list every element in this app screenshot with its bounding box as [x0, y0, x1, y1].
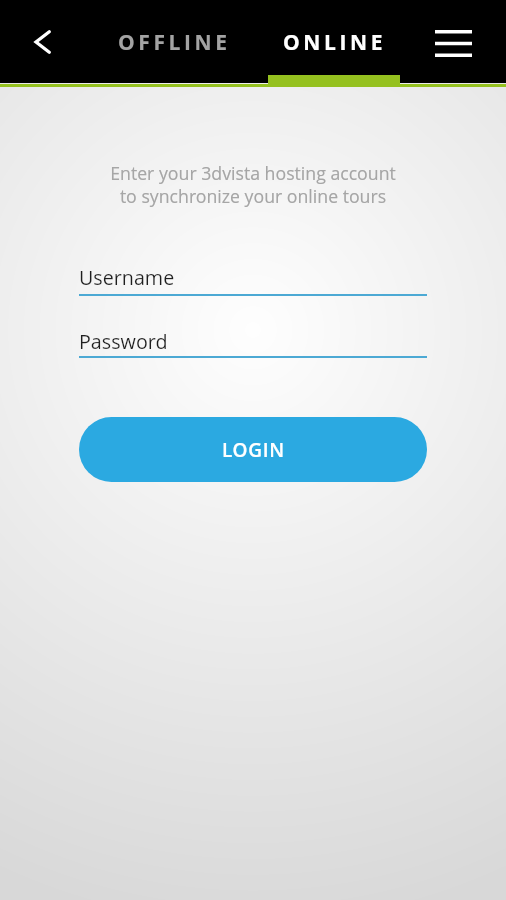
button[interactable]: OFFLINE: [110, 0, 239, 83]
button[interactable]: ONLINE: [269, 0, 401, 83]
button[interactable]: Username: [79, 264, 427, 298]
staticText: Enter your 3dvista hosting account to sy…: [0, 161, 506, 208]
staticText: OFFLINE: [118, 28, 231, 57]
staticText: Password: [79, 328, 168, 355]
staticText: ONLINE: [283, 28, 387, 57]
button[interactable]: Password: [79, 328, 427, 362]
button[interactable]: Back: [18, 18, 66, 66]
staticText: LOGIN: [222, 437, 285, 463]
staticText: Username: [79, 264, 175, 291]
button[interactable]: LOGIN: [79, 417, 427, 482]
button[interactable]: Menu: [429, 19, 477, 67]
